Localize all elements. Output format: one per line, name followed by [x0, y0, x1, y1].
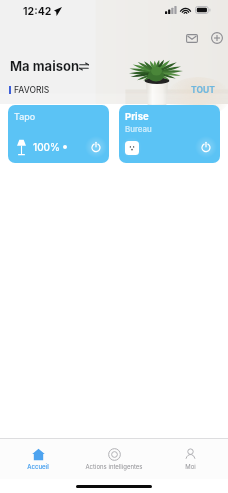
- staticText: Prise: [125, 111, 149, 122]
- button[interactable]: TOUT: [189, 82, 217, 98]
- staticText: Bureau: [125, 124, 152, 134]
- staticText: FAVORIS: [14, 85, 50, 95]
- staticText: Accueil: [27, 463, 49, 470]
- staticText: Moi: [185, 463, 196, 470]
- staticText: 100%: [33, 141, 60, 153]
- staticText: Tapo: [14, 111, 36, 122]
- button[interactable]: Accueil: [0, 439, 76, 479]
- staticText: 12:42: [23, 5, 52, 18]
- staticText: Actions intelligentes: [85, 463, 143, 470]
- button[interactable]: Moi: [152, 439, 228, 479]
- staticText: Ma maison: [10, 58, 79, 74]
- button[interactable]: Power: [195, 136, 217, 158]
- button[interactable]: Actions intelligentes: [76, 439, 152, 479]
- button[interactable]: Prise: [119, 105, 220, 163]
- button[interactable]: Tapo: [8, 105, 109, 163]
- button[interactable]: Add device: [207, 28, 227, 48]
- staticText: TOUT: [191, 85, 215, 95]
- button[interactable]: Ma maison: [10, 56, 89, 76]
- button[interactable]: Messages: [182, 28, 202, 48]
- button[interactable]: Power: [85, 136, 107, 158]
